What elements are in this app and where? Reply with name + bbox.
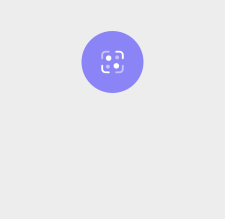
button[interactable]: Scan (81, 31, 143, 93)
